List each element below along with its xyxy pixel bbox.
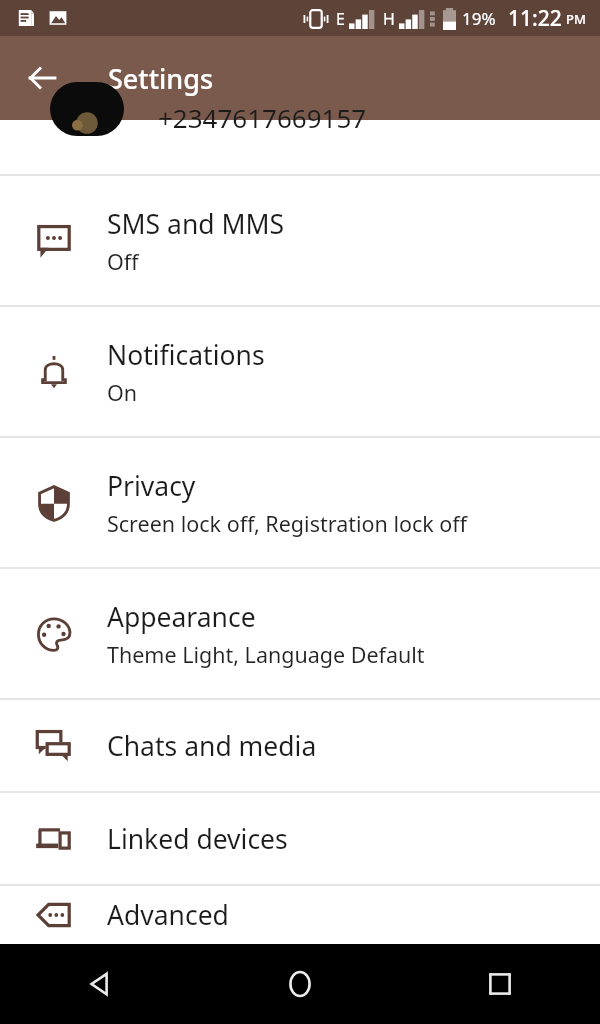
button[interactable]: Advanced [0,886,600,944]
button[interactable]: Back [0,944,200,1024]
staticText: H [383,8,395,30]
staticText: 19% [462,7,496,30]
button[interactable]: Back [14,50,70,106]
button[interactable]: Home [200,944,400,1024]
staticText: PM [566,10,586,28]
button[interactable]: Appearance [0,569,600,698]
staticText: Screen lock off, Registration lock off [107,509,468,538]
button[interactable]: Chats and media [0,700,600,791]
staticText: Settings [108,60,214,97]
staticText: 11:22 [508,4,562,33]
staticText: Advanced [107,897,229,933]
staticText: SMS and MMS [107,206,285,242]
button[interactable]: Notifications [0,307,600,436]
staticText: Theme Light, Language Default [107,640,425,669]
staticText: On [107,378,138,407]
staticText: Notifications [107,337,265,373]
staticText: E [336,8,345,30]
button[interactable]: Recent apps [400,944,600,1024]
staticText: +2347617669157 [158,100,367,135]
button[interactable]: Privacy [0,438,600,567]
staticText: Appearance [107,599,256,635]
button[interactable]: Linked devices [0,793,600,884]
staticText: Privacy [107,468,196,504]
staticText: Off [107,247,139,276]
button[interactable]: +2347617669157 [0,120,600,174]
staticText: Linked devices [107,821,288,857]
staticText: Chats and media [107,728,317,764]
button[interactable]: SMS and MMS [0,176,600,305]
